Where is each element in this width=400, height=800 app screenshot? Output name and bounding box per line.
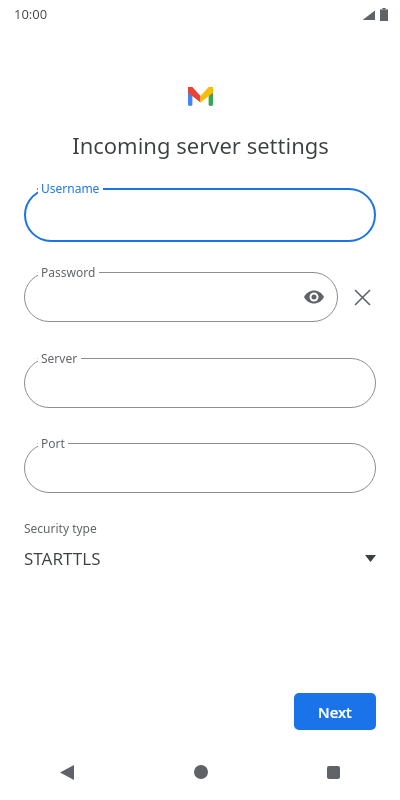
button[interactable]: Home <box>134 744 267 800</box>
staticText: Security type <box>24 520 97 536</box>
button[interactable]: Security type <box>0 520 400 570</box>
button[interactable]: Back <box>0 744 134 800</box>
button[interactable]: Show password <box>300 283 328 311</box>
button[interactable]: Next <box>294 693 376 730</box>
button[interactable] <box>24 272 338 322</box>
button[interactable] <box>24 358 376 408</box>
staticText: Username <box>41 180 100 196</box>
staticText: Server <box>41 350 78 366</box>
staticText: Incoming server settings <box>72 130 329 160</box>
staticText: Password <box>41 264 96 280</box>
button[interactable] <box>24 443 376 493</box>
staticText: Next <box>318 702 352 722</box>
staticText: STARTTLS <box>24 547 101 570</box>
button[interactable]: Recents <box>267 744 400 800</box>
button[interactable] <box>24 188 376 242</box>
button[interactable]: Clear password <box>348 283 376 311</box>
staticText: 10:00 <box>14 5 48 23</box>
staticText: Port <box>41 435 65 451</box>
